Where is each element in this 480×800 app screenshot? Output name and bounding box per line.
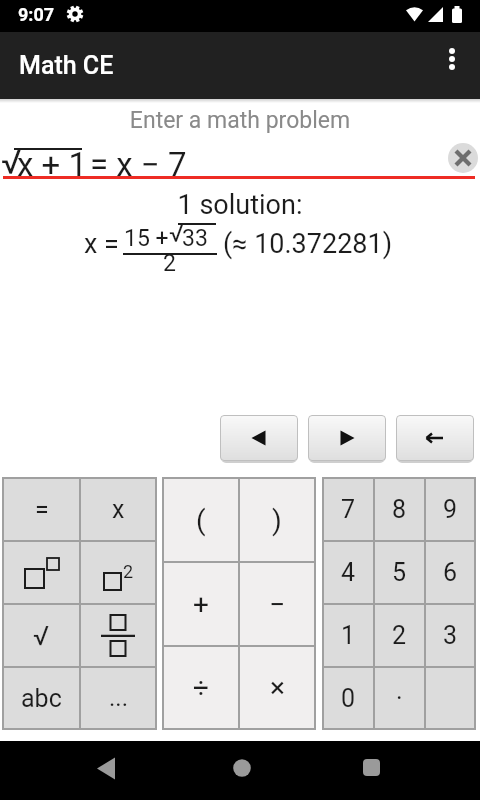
button[interactable]: 8 <box>375 479 424 540</box>
staticText: 2 <box>163 250 176 277</box>
staticText: abc <box>21 684 62 713</box>
staticText: x <box>112 495 125 524</box>
button[interactable]: 4 <box>324 542 373 603</box>
staticText: − <box>269 588 286 621</box>
staticText: 2 <box>123 561 134 582</box>
staticText: ... <box>109 684 128 712</box>
button[interactable] <box>308 415 386 461</box>
staticText: 0 <box>341 684 356 713</box>
staticText: 6 <box>443 558 458 587</box>
button[interactable]: ... <box>81 668 155 728</box>
button[interactable]: x <box>81 479 155 540</box>
button[interactable] <box>220 415 298 461</box>
staticText: ( <box>196 504 206 537</box>
staticText: x = <box>84 228 126 260</box>
button[interactable]: + <box>164 563 238 645</box>
button[interactable] <box>225 755 259 785</box>
button[interactable]: √ <box>4 605 79 666</box>
button[interactable]: 7 <box>324 479 373 540</box>
staticText: · <box>396 684 403 713</box>
button[interactable] <box>88 755 126 785</box>
staticText: ) <box>272 504 282 537</box>
staticText: 7 <box>341 495 356 524</box>
staticText: Enter a math problem <box>0 107 480 134</box>
staticText: 9:07 <box>18 4 55 25</box>
button[interactable]: 2 <box>375 605 424 666</box>
staticText: = <box>35 495 49 524</box>
button[interactable] <box>396 415 474 461</box>
button[interactable]: − <box>240 563 314 645</box>
button[interactable] <box>4 542 79 603</box>
staticText: (≈ 10.372281) <box>223 228 393 260</box>
staticText: 15 + <box>124 225 175 252</box>
staticText: 8 <box>392 495 407 524</box>
button[interactable] <box>448 143 478 173</box>
button[interactable] <box>438 42 466 90</box>
staticText: 1 solution: <box>0 189 480 221</box>
staticText: = x − 7 <box>90 145 187 184</box>
button[interactable]: 2 <box>81 542 155 603</box>
staticText: Math CE <box>19 51 114 80</box>
staticText: √ <box>169 219 184 248</box>
staticText: x + 1 <box>17 145 88 184</box>
button[interactable]: = <box>4 479 79 540</box>
button[interactable]: 9 <box>426 479 474 540</box>
button[interactable]: × <box>240 647 314 728</box>
button[interactable]: ÷ <box>164 647 238 728</box>
button[interactable]: · <box>375 668 424 728</box>
button[interactable]: 6 <box>426 542 474 603</box>
button[interactable]: 1 <box>324 605 373 666</box>
staticText: 1 <box>341 621 356 650</box>
staticText: × <box>270 671 285 704</box>
button[interactable]: 0 <box>324 668 373 728</box>
button[interactable]: abc <box>4 668 79 728</box>
button[interactable]: 5 <box>375 542 424 603</box>
staticText: + <box>193 588 209 621</box>
staticText: √ <box>33 620 50 652</box>
button[interactable]: ) <box>240 479 314 561</box>
button[interactable] <box>81 605 155 666</box>
staticText: 33 <box>182 225 208 252</box>
button[interactable]: ( <box>164 479 238 561</box>
staticText: ÷ <box>193 671 209 704</box>
button[interactable]: 3 <box>426 605 474 666</box>
staticText: 3 <box>443 621 458 650</box>
staticText: 5 <box>392 558 407 587</box>
staticText: 9 <box>443 495 458 524</box>
staticText: 2 <box>392 621 407 650</box>
button[interactable] <box>355 755 389 785</box>
staticText: √ <box>1 142 22 183</box>
staticText: 4 <box>341 558 356 587</box>
